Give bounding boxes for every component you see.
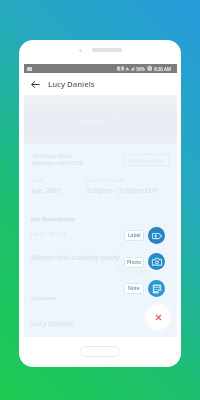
staticText: Kitchen sink draining slowly [31, 253, 120, 262]
staticText: DATE [32, 178, 44, 184]
staticText: 58% [136, 66, 145, 72]
button[interactable]: Label [124, 230, 144, 241]
staticText: Job Description [31, 215, 75, 223]
staticText: Customer [31, 294, 57, 301]
button[interactable]: Note [148, 280, 165, 297]
button[interactable]: Back [28, 77, 43, 92]
staticText: 2:00pm - 3:00pm EDT [86, 185, 158, 195]
button[interactable]: Close actions menu [147, 306, 169, 328]
staticText: 9:26 AM [154, 66, 172, 72]
staticText: ARRIVE BETWEEN [86, 178, 125, 184]
staticText: Lucy Daniels [48, 79, 95, 90]
button[interactable]: Note [124, 283, 144, 294]
button[interactable]: Photo [124, 257, 144, 268]
staticText: Photo [127, 259, 141, 266]
staticText: Get Directions [129, 157, 164, 164]
staticText: More Details [118, 268, 148, 275]
button[interactable]: Home [80, 346, 120, 357]
staticText: Marston, MA 01756 [32, 159, 84, 167]
staticText: Lucy Daniels [31, 318, 74, 328]
button[interactable]: Label [148, 227, 165, 244]
button[interactable]: Photo [148, 253, 165, 270]
staticText: Job ID: 485728 [31, 230, 67, 237]
button[interactable]: Get Directions [123, 154, 169, 166]
staticText: Label [128, 232, 141, 239]
staticText: 46A Cape Road [32, 152, 72, 160]
staticText: Jun 20th [32, 185, 62, 195]
staticText: Note [128, 285, 140, 292]
